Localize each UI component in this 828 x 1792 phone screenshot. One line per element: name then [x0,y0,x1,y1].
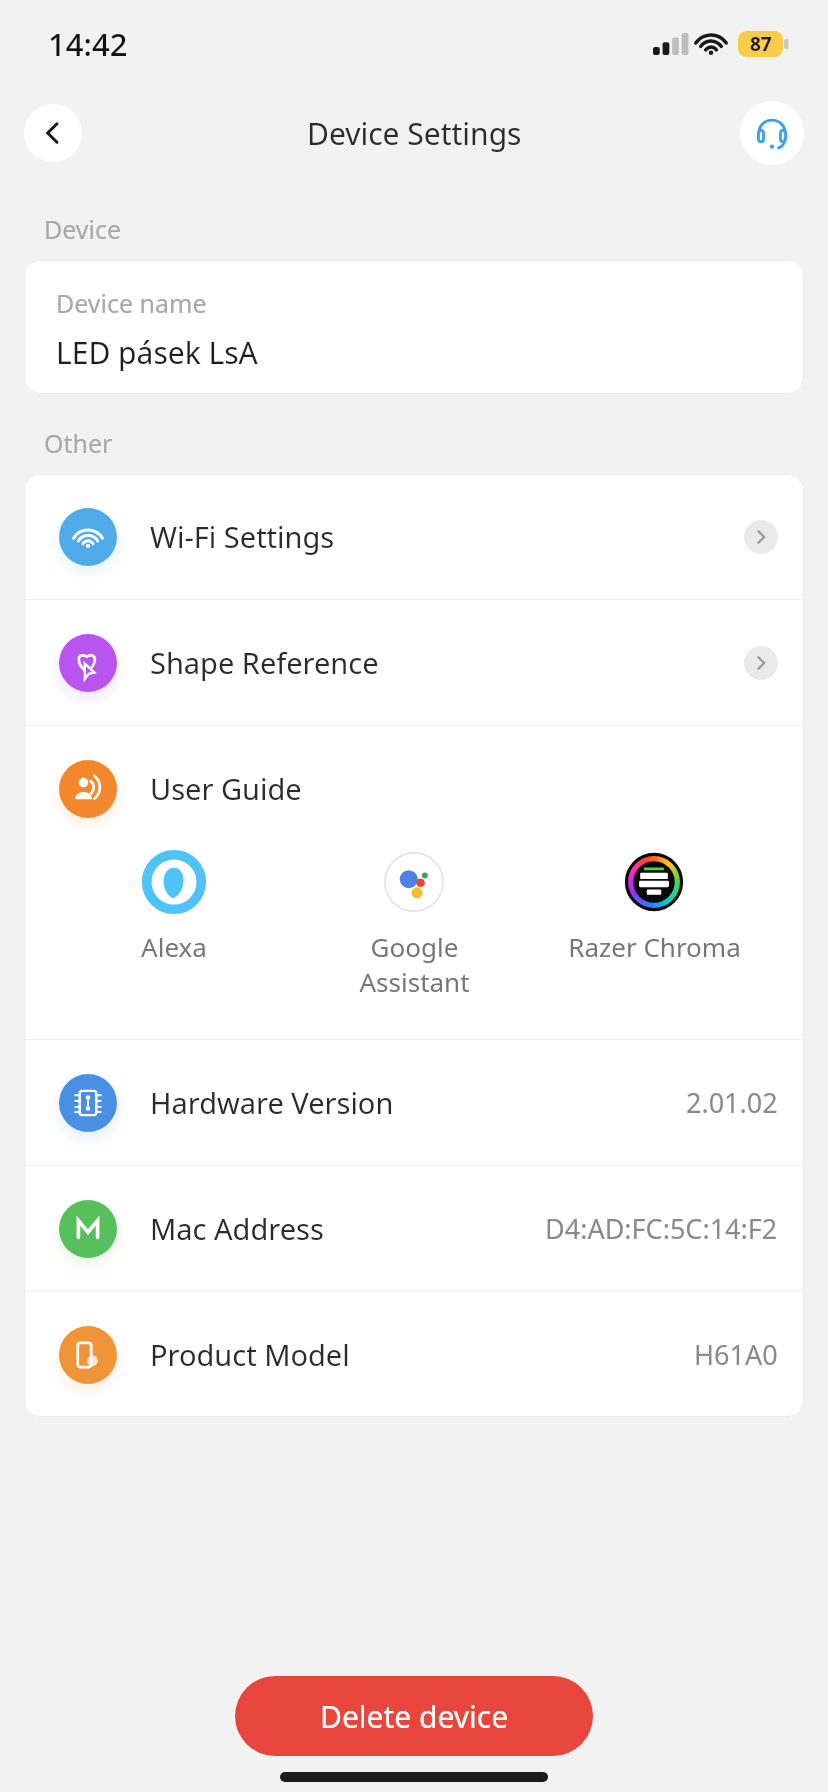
button[interactable]: Wi-Fi Settings [24,474,804,599]
staticText: 2.01.02 [686,1084,778,1121]
button[interactable]: Alexa [64,851,284,964]
button[interactable]: Razer Chroma [544,851,764,964]
staticText: 14:42 [48,23,128,65]
button[interactable]: Hardware Version [24,1040,804,1165]
staticText: D4:AD:FC:5C:14:F2 [545,1210,778,1247]
staticText: Mac Address [150,1209,324,1248]
staticText: Wi-Fi Settings [150,517,335,556]
button[interactable]: Google Assistant [304,851,524,999]
button[interactable]: Mac Address [24,1166,804,1291]
button[interactable]: Product Model [24,1292,804,1417]
button[interactable]: Back [24,104,82,162]
staticText: Device [44,212,122,246]
button[interactable]: Shape Reference [24,600,804,725]
button[interactable]: Delete device [235,1676,593,1756]
button[interactable]: User Guide [24,726,804,1039]
staticText: Device Settings [307,113,522,154]
staticText: Google Assistant [359,929,470,999]
staticText: Shape Reference [150,643,379,682]
staticText: LED pásek LsA [56,332,258,373]
staticText: User Guide [150,769,302,808]
button[interactable]: Device name [24,260,804,394]
staticText: Device name [56,286,207,320]
staticText: Hardware Version [150,1083,394,1122]
staticText: 87 [750,31,772,57]
button[interactable]: Customer support [740,101,804,165]
staticText: Product Model [150,1335,350,1374]
staticText: Razer Chroma [568,929,741,964]
staticText: Delete device [320,1696,509,1737]
staticText: Other [44,426,113,460]
staticText: H61A0 [694,1336,778,1373]
staticText: Alexa [141,929,207,964]
